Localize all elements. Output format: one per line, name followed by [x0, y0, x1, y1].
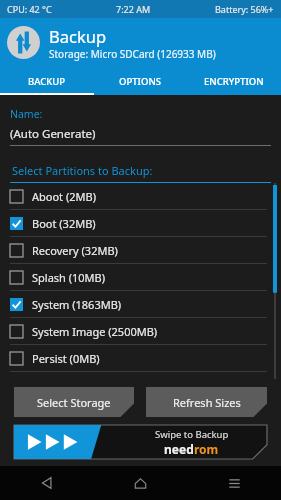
staticText: Boot (32MB) [32, 216, 96, 231]
button[interactable]: Menu [187, 466, 281, 500]
staticText: need [164, 441, 194, 457]
button[interactable]: Home [93, 466, 187, 500]
staticText: ENCRYPTION [204, 75, 264, 88]
staticText: Select Partitions to Backup: [12, 163, 153, 178]
button[interactable]: Persist (0MB) [10, 345, 267, 371]
staticText: OPTIONS [119, 75, 161, 88]
button[interactable]: System Image (2500MB) [10, 318, 267, 344]
staticText: Splash (10MB) [32, 270, 106, 285]
button[interactable]: Boot (32MB) [10, 210, 267, 236]
staticText: 7:22 AM [116, 3, 151, 15]
staticText: Refresh Sizes [173, 395, 241, 410]
button[interactable]: System (1863MB) [10, 291, 267, 317]
staticText: Backup [49, 25, 107, 47]
button[interactable]: Swipe to Backup [14, 425, 267, 459]
button[interactable]: ENCRYPTION [187, 67, 281, 95]
button[interactable]: OPTIONS [93, 67, 187, 95]
staticText: Name: [10, 107, 43, 121]
staticText: Persist (0MB) [32, 351, 100, 366]
button[interactable]: Back [0, 466, 93, 500]
staticText: BACKUP [28, 75, 66, 88]
staticText: System (1863MB) [32, 297, 122, 312]
staticText: rom [194, 441, 219, 457]
staticText: System Image (2500MB) [32, 324, 158, 339]
button[interactable]: Refresh Sizes [146, 387, 267, 417]
button[interactable]: Splash (10MB) [10, 264, 267, 290]
staticText: Storage: Micro SDCard (126933 MB) [49, 47, 216, 61]
staticText: Recovery (32MB) [32, 243, 118, 258]
button[interactable]: (Auto Generate) [10, 126, 96, 142]
other: Backup [7, 26, 40, 59]
staticText: Battery: 56%+ [215, 3, 274, 15]
button[interactable]: BACKUP [0, 67, 93, 95]
staticText: CPU: 42 °C [7, 3, 52, 15]
staticText: Aboot (2MB) [32, 189, 96, 204]
button[interactable]: Aboot (2MB) [10, 183, 267, 209]
button[interactable]: Select Storage [14, 387, 134, 417]
button[interactable]: Recovery (32MB) [10, 237, 267, 263]
staticText: Swipe to Backup [155, 428, 229, 441]
staticText: Select Storage [37, 395, 111, 410]
